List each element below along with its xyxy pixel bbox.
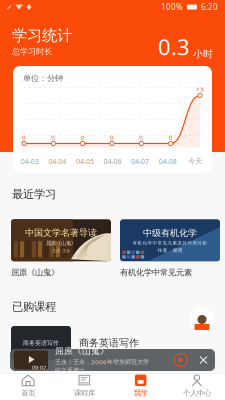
staticText: 13 [196, 85, 204, 94]
staticText: 今天 [188, 157, 202, 165]
staticText: 有机化学中常见元素及其作用分析 [132, 240, 207, 246]
staticText: 04-04 [48, 156, 66, 166]
staticText: 首页 [21, 388, 35, 398]
staticText: 04-03 [21, 156, 39, 166]
staticText: 0 [110, 133, 114, 142]
staticText: 作者：谢明 [157, 247, 182, 253]
button[interactable]: 我学 [112, 370, 169, 400]
staticText: 09:02 [32, 364, 46, 371]
staticText: 课程库 [74, 388, 95, 398]
staticText: 学习统计 [12, 26, 72, 45]
staticText: 小时 [193, 48, 213, 60]
button[interactable]: Play [173, 352, 189, 368]
staticText: 6:20 [201, 2, 218, 12]
button[interactable]: 个人中心 [169, 370, 225, 400]
staticText: 商务英语写作 [23, 339, 59, 347]
staticText: 个人中心 [183, 388, 211, 398]
button[interactable]: 课程库 [56, 370, 112, 400]
staticText: 商务英语写作 [79, 337, 139, 349]
staticText: 屈原《山鬼》 [46, 240, 76, 247]
staticText: 主讲 王永 [52, 248, 70, 254]
staticText: 04-08 [159, 156, 177, 166]
staticText: 04-07 [131, 156, 149, 166]
staticText: 100% [161, 2, 183, 12]
staticText: 0 [139, 133, 143, 142]
staticText: 有机化学中常见元素 [120, 267, 192, 278]
button[interactable]: 商务英语写作 [0, 314, 225, 360]
staticText: 0 [22, 133, 26, 142]
button[interactable]: 咨询 [188, 306, 215, 333]
button[interactable]: Close [196, 352, 211, 367]
button[interactable]: 首页 [0, 370, 56, 400]
staticText: 屈原《山鬼》 [11, 267, 59, 278]
staticText: 0 [81, 133, 85, 142]
staticText: 0.3 [158, 32, 190, 62]
staticText: 王永｜王永，2006年华东师范大学中文系博士… [55, 358, 149, 374]
staticText: 我学 [134, 388, 148, 398]
staticText: 中国文学名著导读 [25, 227, 97, 238]
staticText: 屈原《山鬼》 [55, 346, 109, 357]
staticText: 已购课程 [12, 300, 56, 314]
staticText: 04-06 [103, 156, 121, 166]
staticText: 0 [169, 133, 173, 142]
button[interactable]: 中国文学名著导读 [11, 219, 111, 278]
staticText: 总学习时长 [12, 46, 52, 57]
staticText: 单位：分钟 [23, 73, 63, 83]
button[interactable]: 中级有机化学 [120, 219, 220, 278]
staticText: 最近学习 [12, 187, 56, 201]
staticText: 0 [51, 133, 55, 142]
staticText: 04-05 [76, 156, 94, 166]
staticText: 中级有机化学 [143, 227, 197, 239]
